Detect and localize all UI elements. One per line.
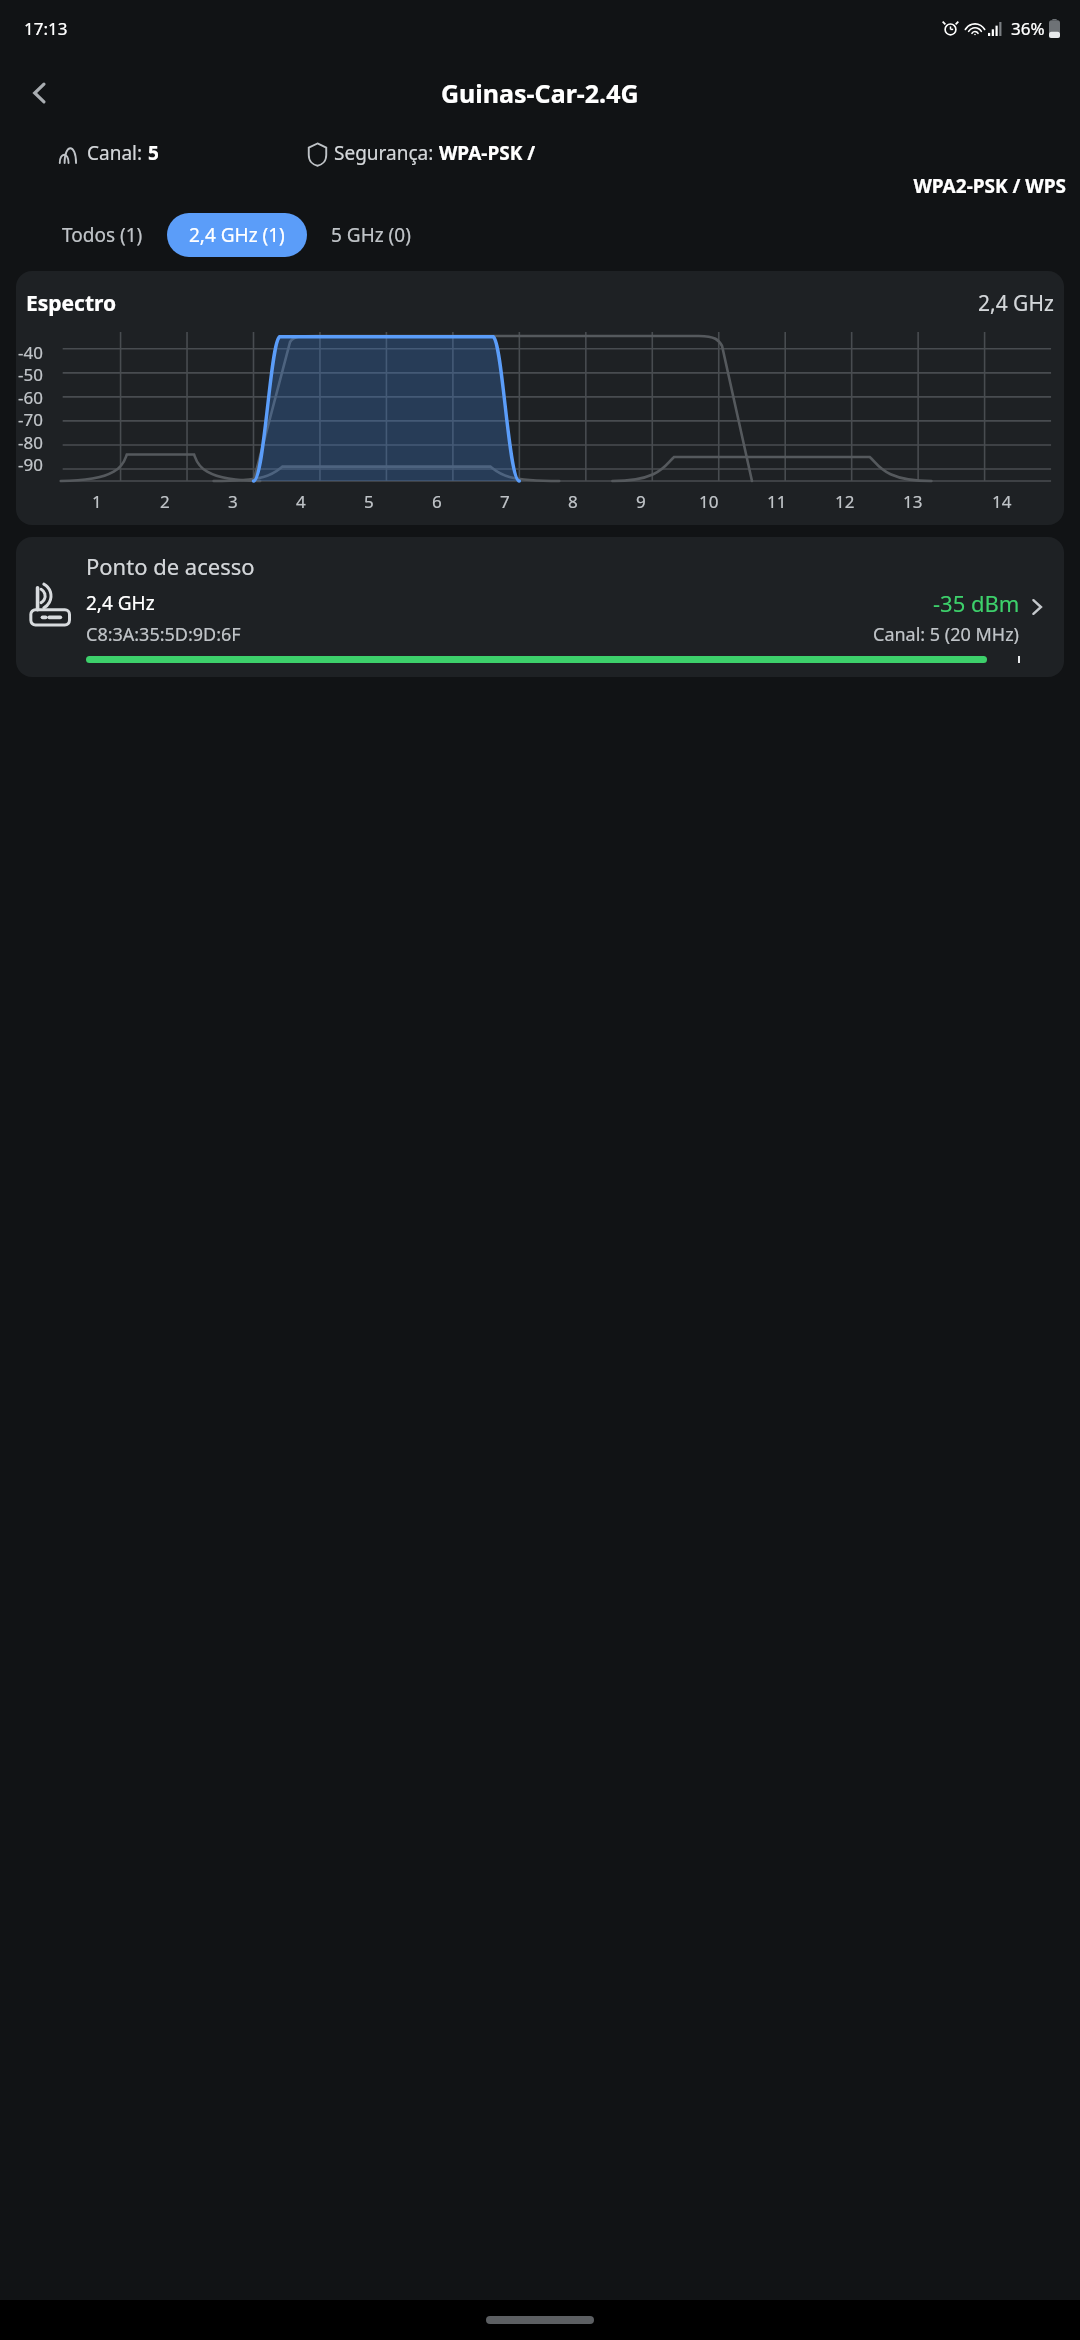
staticText: Todos (1) (62, 222, 143, 248)
staticText: 5 GHz (0) (331, 222, 411, 248)
staticText: WPA2-PSK / WPS (334, 173, 1066, 199)
staticText: -40 (18, 341, 43, 364)
staticText: 2,4 GHz (978, 289, 1054, 318)
staticText: WPA-PSK / (439, 140, 536, 166)
staticText: 2,4 GHz (86, 590, 155, 616)
staticText: -90 (18, 453, 43, 476)
staticText: -50 (18, 363, 43, 386)
staticText: 9 (636, 490, 646, 513)
button[interactable]: Espectro (16, 271, 1064, 525)
staticText: 10 (699, 490, 719, 513)
staticText: 36% (1011, 17, 1045, 40)
staticText: 11 (767, 490, 787, 513)
staticText: Espectro (26, 289, 117, 318)
button[interactable]: Details (1020, 590, 1054, 624)
button[interactable]: Back (12, 65, 68, 121)
staticText: -70 (18, 408, 43, 431)
staticText: 5 (364, 490, 374, 513)
staticText: Canal: (87, 140, 148, 166)
staticText: 4 (296, 490, 306, 513)
staticText: 14 (992, 490, 1012, 513)
staticText: 1 (92, 490, 102, 513)
staticText: 17:13 (24, 17, 68, 40)
staticText: Ponto de acesso (86, 551, 255, 581)
staticText: 2,4 GHz (1) (189, 222, 285, 248)
staticText: Segurança: (334, 140, 439, 166)
staticText: 5 (148, 140, 159, 166)
staticText: 8 (568, 490, 578, 513)
staticText: C8:3A:35:5D:9D:6F (86, 622, 241, 647)
button[interactable]: 5 GHz (0) (317, 213, 425, 257)
staticText: -60 (18, 386, 43, 409)
staticText: 6 (432, 490, 442, 513)
staticText: Canal: 5 (20 MHz) (873, 622, 1020, 647)
button[interactable]: Todos (1) (48, 213, 157, 257)
button[interactable]: Ponto de acesso (16, 537, 1064, 677)
staticText: 12 (835, 490, 855, 513)
staticText: -35 dBm (933, 588, 1020, 618)
staticText: Guinas-Car-2.4G (441, 76, 639, 110)
button[interactable]: 2,4 GHz (1) (167, 213, 307, 257)
staticText: 3 (228, 490, 238, 513)
staticText: 7 (500, 490, 510, 513)
staticText: -80 (18, 431, 43, 454)
staticText: 13 (903, 490, 923, 513)
staticText: 2 (160, 490, 170, 513)
